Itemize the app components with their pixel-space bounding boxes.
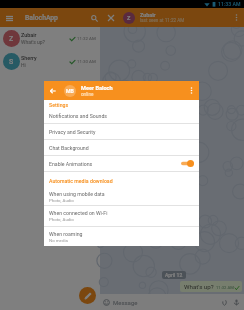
staticText: Enable Animations	[49, 161, 93, 167]
staticText: 11:30 AM	[77, 59, 96, 64]
button[interactable]: When roaming	[44, 227, 199, 246]
staticText: Sherry	[21, 55, 37, 61]
staticText: BalochApp	[25, 14, 58, 22]
staticText: April 12	[165, 272, 183, 278]
staticText: No media	[49, 238, 68, 243]
staticText: MB	[66, 88, 74, 94]
staticText: Z	[9, 35, 14, 43]
staticText: Hi	[21, 62, 26, 68]
button[interactable]: More options	[185, 84, 198, 97]
staticText: last seen at 11:22 AM	[140, 18, 185, 23]
button[interactable]: More options	[230, 11, 243, 24]
staticText: 11:32 AM	[216, 285, 234, 290]
staticText: When using mobile data	[49, 191, 105, 197]
button[interactable]: Record voice message	[230, 296, 242, 308]
button[interactable]: When using mobile data	[44, 189, 199, 205]
button[interactable]: Attach file	[218, 296, 230, 308]
staticText: What's up?	[184, 283, 214, 290]
button[interactable]: Chat Background	[44, 140, 199, 155]
staticText: S	[9, 58, 14, 66]
staticText: Chat Background	[49, 145, 89, 151]
staticText: When roaming	[49, 231, 83, 237]
button[interactable]: Close search	[104, 11, 117, 24]
staticText: online	[81, 92, 94, 97]
button[interactable]: When connected on Wi-Fi	[44, 206, 199, 226]
staticText: Z	[127, 15, 131, 22]
staticText: Notifications and Sounds	[49, 113, 108, 119]
staticText: Privacy and Security	[49, 129, 96, 135]
staticText: What's up?	[21, 39, 45, 45]
staticText: Zubair	[21, 32, 37, 38]
staticText: Zubair	[140, 12, 156, 18]
staticText: Automatic media download	[49, 178, 113, 184]
button[interactable]: Search	[87, 11, 101, 25]
staticText: Message	[113, 299, 138, 306]
button[interactable]: New message	[79, 287, 96, 304]
button[interactable]: Menu	[2, 11, 16, 25]
button[interactable]: Back	[47, 85, 58, 96]
staticText: 11:32 AM	[77, 36, 96, 41]
staticText: 11:33 AM	[218, 1, 241, 7]
button[interactable]: Enable Animations	[44, 156, 199, 171]
staticText: When connected on Wi-Fi	[49, 210, 108, 216]
button[interactable]: Notifications and Sounds	[44, 109, 199, 123]
staticText: Photo, Audio	[49, 198, 74, 203]
button[interactable]: Privacy and Security	[44, 124, 199, 139]
staticText: Photo, Audio	[49, 217, 74, 222]
staticText: Settings	[49, 102, 69, 108]
button[interactable]: Z	[0, 27, 100, 50]
staticText: Meer Baloch	[81, 85, 113, 92]
button[interactable]: S	[0, 50, 100, 73]
